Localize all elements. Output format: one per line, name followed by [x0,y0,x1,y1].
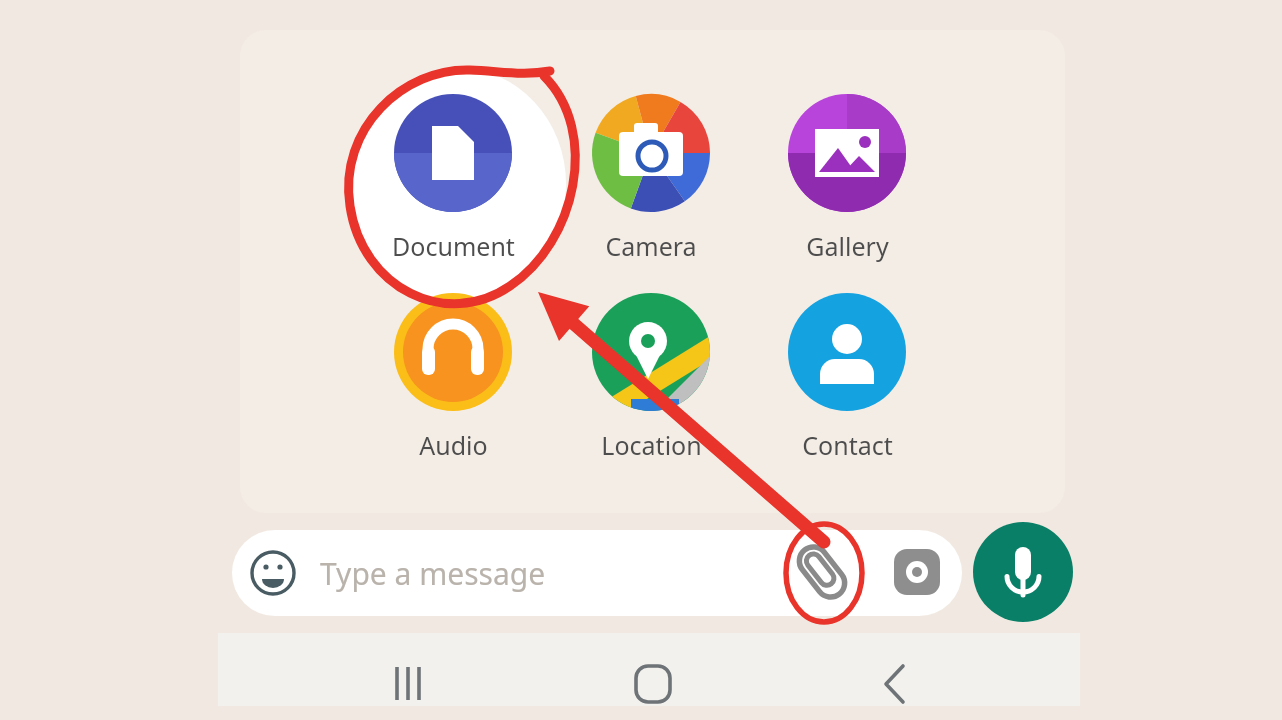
button[interactable]: Location [591,292,711,462]
staticText: Type a message [320,553,546,594]
button[interactable]: Contact [787,292,907,462]
button[interactable]: Type a message [320,553,546,594]
button[interactable]: Location [566,428,736,462]
staticText: Document [392,229,515,263]
button[interactable]: Gallery [787,93,907,263]
button[interactable]: Document [368,229,538,263]
button[interactable]: Audio [368,428,538,462]
button[interactable]: Gallery [762,229,932,263]
staticText: Contact [802,428,893,462]
staticText: Location [601,428,702,462]
button[interactable]: Contact [762,428,932,462]
staticText: Gallery [806,229,889,263]
button[interactable]: Emoji [250,549,298,597]
button[interactable]: Voice message [973,522,1073,622]
button[interactable]: Attach [793,543,851,601]
staticText: Audio [419,428,488,462]
button[interactable]: Camera [888,543,946,601]
staticText: Camera [605,229,697,263]
button[interactable]: Camera [591,93,711,263]
button[interactable]: Audio [393,292,513,462]
button[interactable]: Recent apps [378,648,440,694]
button[interactable]: Camera [566,229,736,263]
button[interactable]: Document [393,93,513,263]
button[interactable]: Home [622,648,684,694]
button[interactable]: Back [864,648,926,694]
